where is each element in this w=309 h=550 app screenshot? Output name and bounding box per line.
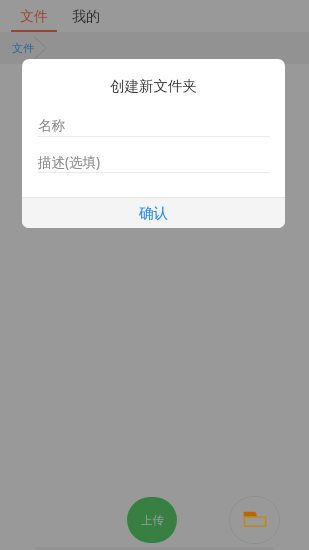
staticText: 文件 bbox=[20, 8, 48, 26]
staticText: 描述(选填) bbox=[38, 153, 101, 171]
button[interactable]: 文件 bbox=[8, 0, 60, 32]
staticText: 上传 bbox=[141, 513, 164, 527]
staticText: 文件 bbox=[12, 41, 34, 55]
staticText: 创建新文件夹 bbox=[110, 77, 197, 95]
button[interactable]: 确认 bbox=[22, 198, 285, 228]
button[interactable]: 上传 bbox=[127, 497, 177, 543]
staticText: 我的 bbox=[72, 8, 100, 26]
button[interactable]: 新建文件夹 bbox=[229, 496, 280, 544]
button[interactable]: 文件 bbox=[12, 32, 309, 64]
staticText: 确认 bbox=[139, 204, 168, 222]
staticText: 名称 bbox=[38, 117, 65, 134]
button[interactable]: 我的 bbox=[60, 0, 112, 32]
